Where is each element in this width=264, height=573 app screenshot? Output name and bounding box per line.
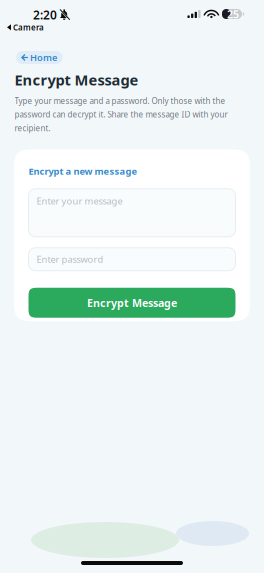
staticText: Enter password (36, 253, 103, 265)
staticText: 25 (227, 7, 239, 21)
staticText: Type your message and a password. Only t… (14, 95, 227, 133)
staticText: Encrypt Message (87, 296, 177, 310)
button[interactable]: Encrypt Message (28, 288, 235, 318)
button[interactable]: Home (16, 51, 63, 64)
staticText: 2:20 (33, 7, 57, 23)
staticText: Encrypt a new message (28, 165, 137, 177)
staticText: Enter your message (36, 195, 122, 207)
staticText: Home (30, 51, 57, 64)
staticText: Camera (13, 22, 44, 33)
staticText: Encrypt Message (14, 70, 138, 89)
